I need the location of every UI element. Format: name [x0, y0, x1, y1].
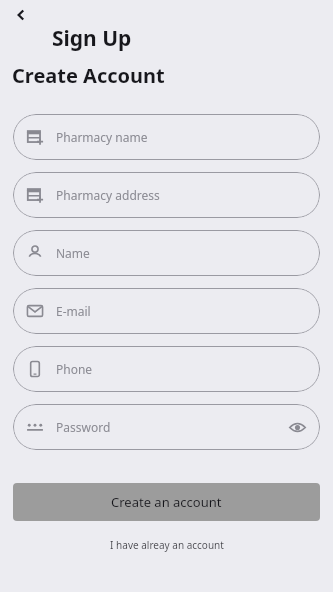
staticText: Password: [56, 419, 111, 435]
staticText: I have alreay an account: [110, 538, 224, 552]
staticText: Create Account: [12, 62, 165, 89]
staticText: Name: [56, 245, 90, 261]
button[interactable]: E-mail: [13, 288, 320, 334]
staticText: Create an account: [111, 493, 222, 511]
button[interactable]: I have alreay an account: [0, 538, 333, 552]
staticText: Pharmacy name: [56, 129, 148, 145]
staticText: E-mail: [56, 303, 91, 319]
button[interactable]: Pharmacy name: [13, 114, 320, 160]
button[interactable]: Create an account: [13, 483, 320, 521]
button[interactable]: Show password: [280, 410, 314, 444]
staticText: Sign Up: [52, 24, 132, 53]
button[interactable]: Password: [13, 404, 320, 450]
staticText: Phone: [56, 361, 93, 377]
staticText: Pharmacy address: [56, 187, 160, 203]
button[interactable]: Name: [13, 230, 320, 276]
button[interactable]: Pharmacy address: [13, 172, 320, 218]
button[interactable]: Back: [6, 0, 36, 30]
button[interactable]: Phone: [13, 346, 320, 392]
